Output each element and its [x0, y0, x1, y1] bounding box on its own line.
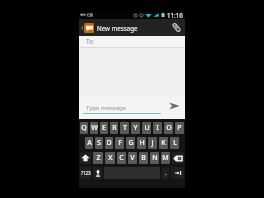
- button[interactable]: Shift: [80, 152, 91, 164]
- staticText: X: [108, 153, 113, 163]
- button[interactable]: A: [85, 137, 93, 149]
- button[interactable]: Y: [131, 122, 140, 134]
- button[interactable]: Back: [79, 19, 185, 36]
- staticText: B: [141, 153, 146, 163]
- button[interactable]: J: [148, 137, 157, 149]
- button[interactable]: L: [170, 137, 179, 149]
- staticText: O: [166, 123, 172, 133]
- button[interactable]: N: [150, 152, 159, 164]
- button[interactable]: V: [128, 152, 137, 164]
- staticText: .: [165, 169, 167, 177]
- button[interactable]: ?123: [80, 167, 91, 179]
- button[interactable]: F: [115, 137, 124, 149]
- button[interactable]: G: [126, 137, 135, 149]
- staticText: D: [106, 138, 112, 148]
- staticText: New message: [97, 24, 138, 32]
- button[interactable]: R: [110, 122, 118, 134]
- staticText: To: [86, 37, 94, 46]
- button[interactable]: Type message: [83, 97, 161, 119]
- button[interactable]: Send: [165, 97, 183, 115]
- staticText: 11:16: [167, 11, 183, 19]
- button[interactable]: W: [90, 122, 98, 134]
- staticText: F: [118, 138, 122, 148]
- button[interactable]: C: [117, 152, 126, 164]
- staticText: W: [91, 123, 98, 133]
- staticText: V: [130, 153, 135, 163]
- button[interactable]: I: [153, 122, 162, 134]
- staticText: H: [139, 138, 145, 148]
- button[interactable]: P: [175, 122, 184, 134]
- staticText: L: [173, 138, 177, 148]
- button[interactable]: Z: [93, 152, 103, 164]
- staticText: T: [123, 123, 127, 133]
- button[interactable]: O: [164, 122, 173, 134]
- staticText: A: [87, 138, 92, 148]
- staticText: C: [119, 153, 124, 163]
- staticText: S: [97, 138, 101, 148]
- other: Attach: [171, 22, 182, 33]
- staticText: Y: [133, 123, 138, 133]
- button[interactable]: H: [137, 137, 146, 149]
- staticText: P: [177, 123, 182, 133]
- button[interactable]: X: [105, 152, 115, 164]
- staticText: Type message: [86, 104, 127, 112]
- staticText: I: [156, 123, 159, 133]
- staticText: K: [161, 138, 166, 148]
- staticText: N: [152, 153, 158, 163]
- staticText: M: [162, 153, 169, 163]
- button[interactable]: Next: [171, 167, 184, 179]
- staticText: ?123: [81, 170, 91, 176]
- staticText: J: [151, 138, 154, 148]
- staticText: R: [112, 123, 117, 133]
- button[interactable]: To: [79, 36, 185, 47]
- button[interactable]: .: [162, 167, 169, 179]
- staticText: E: [102, 123, 106, 133]
- button[interactable]: K: [159, 137, 168, 149]
- button[interactable]: E: [100, 122, 108, 134]
- button[interactable]: M: [161, 152, 170, 164]
- button[interactable]: Voice input: [93, 167, 102, 179]
- staticText: Z: [96, 153, 101, 163]
- button[interactable]: Delete: [172, 152, 184, 164]
- button[interactable]: T: [120, 122, 129, 134]
- button[interactable]: S: [95, 137, 103, 149]
- button[interactable]: Q: [80, 122, 88, 134]
- other: Back: [80, 26, 84, 30]
- button[interactable]: B: [139, 152, 148, 164]
- staticText: G: [128, 138, 134, 148]
- button[interactable]: D: [105, 137, 113, 149]
- staticText: Q: [81, 123, 87, 133]
- button[interactable]: U: [142, 122, 151, 134]
- staticText: U: [144, 123, 150, 133]
